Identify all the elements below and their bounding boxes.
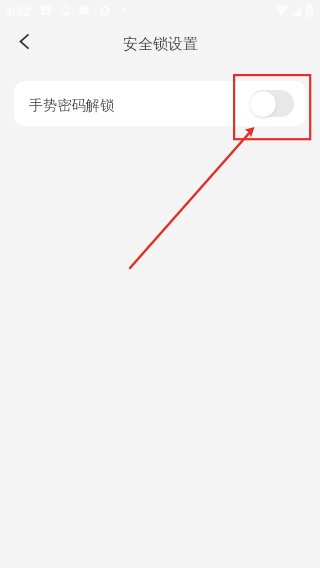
staticText: 手势密码解锁 (29, 96, 115, 114)
staticText: 安全锁设置 (123, 35, 198, 54)
button[interactable]: 手势密码解锁 (14, 81, 306, 126)
button[interactable]: Toggle gesture password unlock (250, 90, 294, 117)
staticText: 3:32 (5, 3, 30, 20)
button[interactable]: Back (2, 19, 46, 63)
